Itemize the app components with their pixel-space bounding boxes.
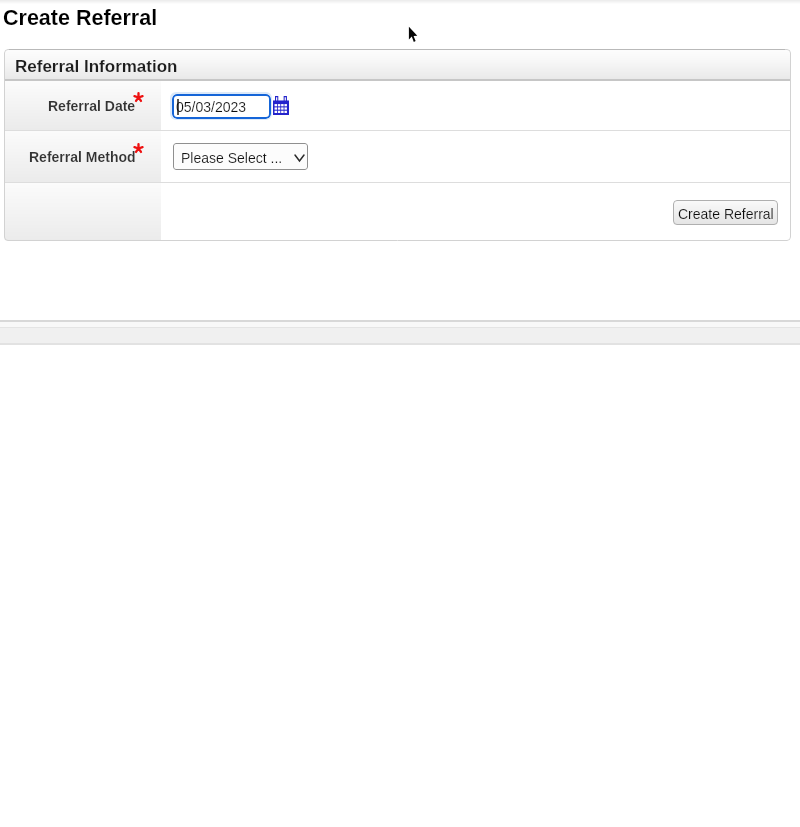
staticText: Please Select ... xyxy=(181,150,283,166)
staticText: 05/03/2023 xyxy=(176,99,247,115)
staticText: Referral Date xyxy=(48,98,136,114)
button[interactable]: Open calendar picker xyxy=(273,96,289,115)
staticText: Create Referral xyxy=(3,6,158,30)
staticText: Referral Method xyxy=(29,149,136,165)
button[interactable]: 05/03/2023 xyxy=(172,94,271,119)
button[interactable]: Create Referral xyxy=(673,200,778,225)
staticText: Referral Information xyxy=(15,57,178,76)
staticText: Create Referral xyxy=(678,206,774,222)
button[interactable]: Please Select ... xyxy=(173,143,308,170)
